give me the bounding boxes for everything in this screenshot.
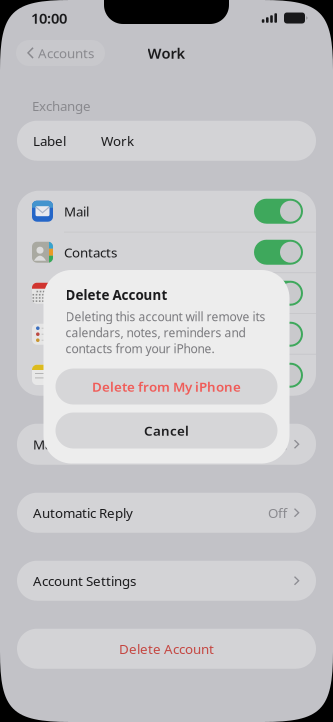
staticText: Work <box>101 132 134 150</box>
button[interactable]: Delete from My iPhone <box>43 368 289 404</box>
staticText: Exchange <box>32 97 91 115</box>
button[interactable]: Contacts <box>17 232 316 273</box>
button[interactable]: Cancel <box>43 412 289 448</box>
staticText: Off <box>268 504 287 522</box>
staticText: No Limit <box>236 435 287 453</box>
button[interactable]: Account Settings <box>0 561 333 601</box>
staticText: Notes <box>64 366 101 384</box>
staticText: Mail Days to Sync <box>33 435 138 453</box>
staticText: Label <box>33 132 66 150</box>
staticText: Calendars <box>64 284 125 302</box>
button[interactable]: Reminders <box>17 314 316 355</box>
button[interactable]: Calendars <box>17 273 316 314</box>
staticText: Mail <box>64 202 89 220</box>
button[interactable]: Mail <box>17 191 316 232</box>
staticText: Automatic Reply <box>33 504 133 522</box>
staticText: 10:00 <box>31 8 67 28</box>
button[interactable]: Accounts <box>16 40 105 66</box>
staticText: Accounts <box>38 44 94 62</box>
staticText: Delete Account <box>65 286 167 304</box>
staticText: Reminders <box>64 325 131 343</box>
staticText: Cancel <box>144 422 189 439</box>
button[interactable]: Mail Days to Sync <box>0 424 333 465</box>
button[interactable]: Notes <box>17 355 316 396</box>
staticText: Delete Account <box>119 640 214 658</box>
button[interactable]: Automatic Reply <box>0 493 333 533</box>
staticText: Delete from My iPhone <box>92 378 241 395</box>
button[interactable]: Delete Account <box>0 629 333 669</box>
staticText: Deleting this account will remove its ca… <box>65 309 265 356</box>
staticText: Contacts <box>64 243 117 261</box>
staticText: Account Settings <box>33 572 136 590</box>
button[interactable]: Label <box>0 121 333 161</box>
staticText: Work <box>147 43 185 63</box>
